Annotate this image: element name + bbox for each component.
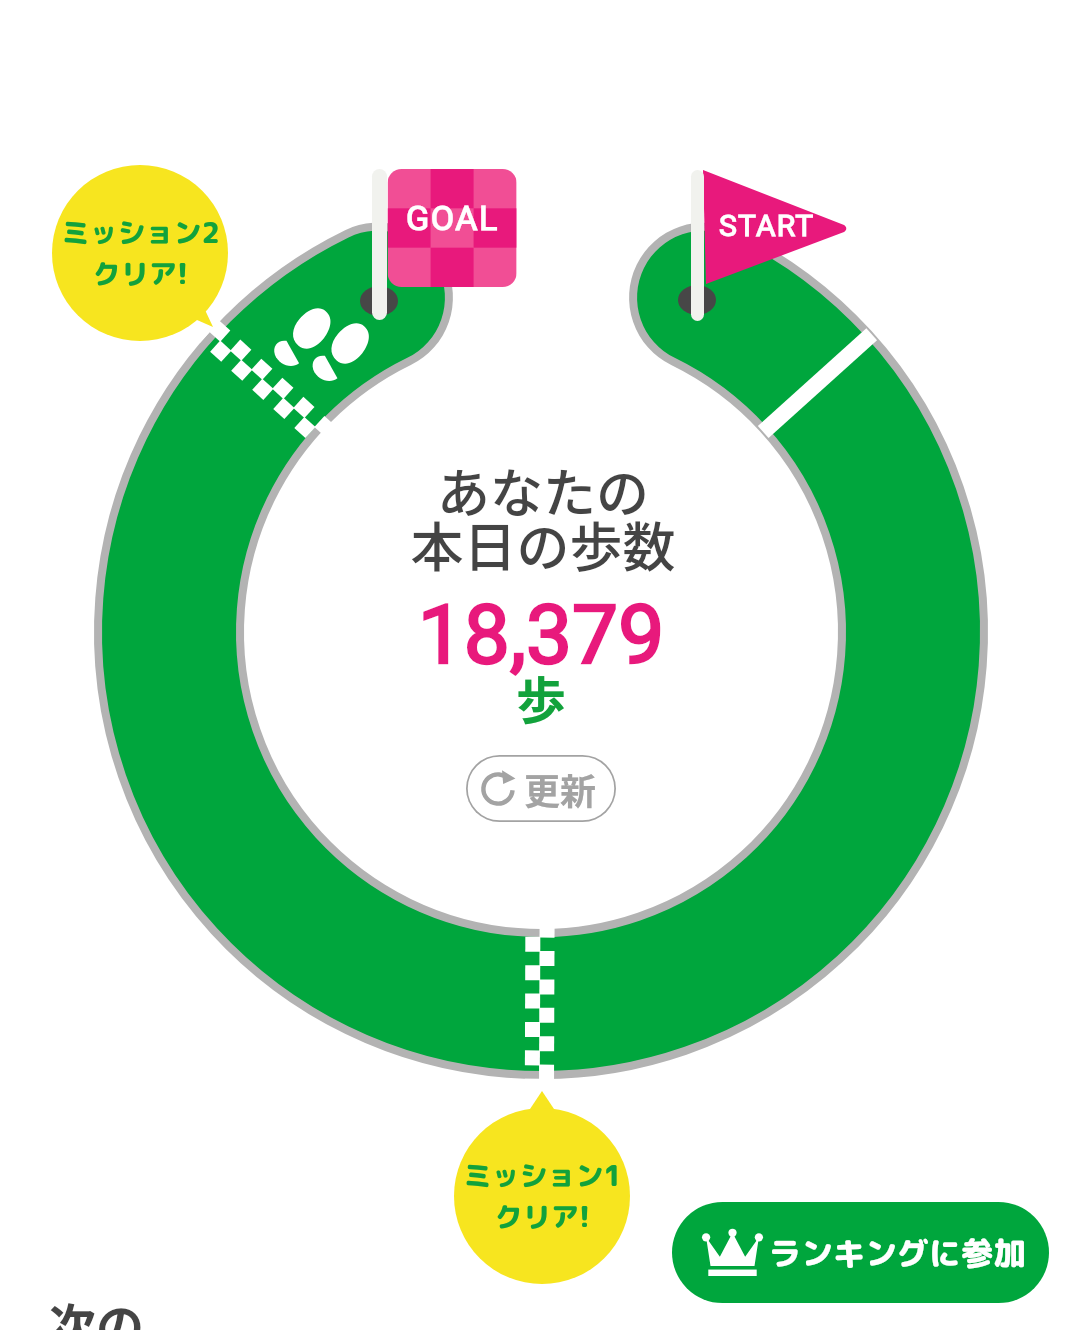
staticText: 歩	[291, 661, 791, 733]
staticText: ミッション1 クリア!	[463, 1156, 622, 1236]
staticText: 更新	[524, 763, 597, 815]
staticText: 18,379	[291, 587, 791, 683]
staticText: あなたの 本日の歩数	[293, 452, 793, 583]
button[interactable]: ミッション1 クリア!	[454, 1108, 630, 1284]
staticText: GOAL	[406, 198, 526, 238]
button[interactable]: 更新	[466, 755, 616, 822]
staticText: ランキングに参加	[769, 1231, 1026, 1276]
staticText: 次の	[48, 1288, 145, 1330]
staticText: START	[719, 208, 849, 243]
button[interactable]: ミッション2 クリア!	[52, 165, 228, 341]
button[interactable]: ランキングに参加	[672, 1202, 1049, 1303]
other: GOAL flag	[372, 169, 520, 320]
other: START flag	[691, 170, 846, 321]
staticText: ミッション2 クリア!	[61, 213, 220, 293]
